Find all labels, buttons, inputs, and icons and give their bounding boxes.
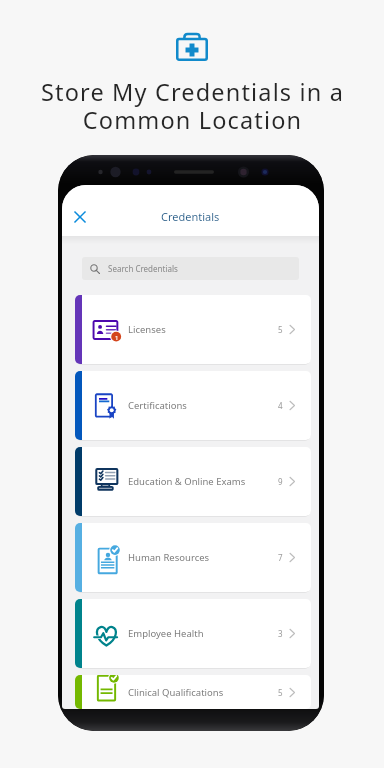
staticText: Store My Credentials in a Common Locatio… [41,76,344,135]
staticText: Credentials [161,209,220,224]
staticText: Employee Health [128,627,204,640]
staticText: 7 [278,552,283,563]
staticText: Clinical Qualifications [128,686,224,699]
button[interactable]: Search Credentials [82,257,299,280]
staticText: 5 [278,687,283,698]
button[interactable]: Human Resources [75,523,311,594]
staticText: Certifications [128,399,187,412]
button[interactable]: 1 [75,295,311,366]
button[interactable]: Close [68,205,92,229]
staticText: Education & Online Exams [128,475,246,488]
staticText: 1 [115,334,119,342]
button[interactable]: Certifications [75,371,311,442]
staticText: Licenses [128,323,166,336]
staticText: Search Credentials [108,263,178,274]
staticText: 4 [278,400,283,411]
staticText: 5 [278,324,283,335]
staticText: 9 [278,476,283,487]
button[interactable]: Clinical Qualifications [75,675,311,709]
staticText: 3 [278,628,283,639]
button[interactable]: Employee Health [75,599,311,670]
button[interactable]: Education & Online Exams [75,447,311,518]
staticText: Human Resources [128,551,210,564]
